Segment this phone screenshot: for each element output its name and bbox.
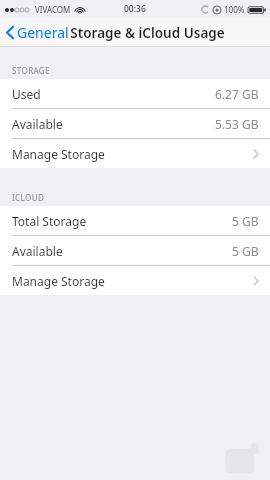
staticText: Storage & iCloud Usage [70, 24, 225, 42]
staticText: Manage Storage [12, 146, 105, 162]
staticText: STORAGE [12, 65, 50, 76]
button[interactable]: Available [0, 236, 270, 265]
button[interactable]: Manage Storage [0, 266, 270, 295]
staticText: 5 GB [232, 213, 259, 229]
staticText: Available [12, 116, 63, 132]
staticText: 5 GB [232, 243, 259, 259]
button[interactable]: Used [0, 79, 270, 108]
button[interactable]: General [0, 19, 75, 46]
other: Open [253, 149, 259, 159]
button[interactable]: Available [0, 109, 270, 138]
staticText: VIVACOM [35, 4, 71, 15]
staticText: 6.27 GB [215, 86, 259, 102]
staticText: Used [12, 86, 41, 102]
button[interactable]: Total Storage [0, 206, 270, 235]
staticText: ICLOUD [12, 192, 45, 203]
staticText: 5.53 GB [215, 116, 259, 132]
staticText: 00:36 [124, 3, 146, 15]
staticText: 100% [224, 4, 245, 15]
staticText: Total Storage [12, 213, 87, 229]
staticText: Available [12, 243, 63, 259]
other: Open [253, 276, 259, 286]
button[interactable]: Manage Storage [0, 139, 270, 168]
staticText: Manage Storage [12, 273, 105, 289]
staticText: General [17, 23, 69, 42]
